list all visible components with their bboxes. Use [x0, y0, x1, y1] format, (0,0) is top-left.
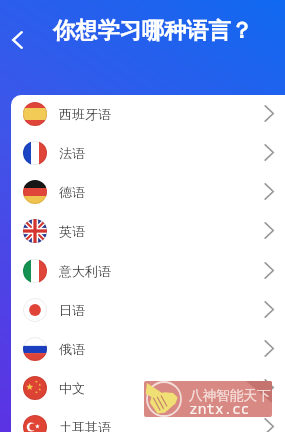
button[interactable]: 土耳其语 — [11, 407, 285, 432]
staticText: 土耳其语 — [59, 419, 111, 432]
staticText: zntx.cc — [189, 399, 250, 417]
button[interactable]: 英语 — [11, 211, 285, 250]
button[interactable]: 法语 — [11, 133, 285, 172]
button[interactable]: 中文 — [11, 368, 285, 407]
staticText: 日语 — [59, 302, 85, 318]
staticText: 德语 — [59, 184, 85, 200]
button[interactable]: 俄语 — [11, 329, 285, 368]
staticText: 法语 — [59, 145, 85, 161]
staticText: 西班牙语 — [59, 106, 111, 122]
button[interactable]: 德语 — [11, 172, 285, 211]
staticText: 俄语 — [59, 341, 85, 357]
button[interactable]: 日语 — [11, 290, 285, 329]
staticText: 意大利语 — [59, 263, 111, 279]
button[interactable]: 西班牙语 — [11, 95, 285, 133]
staticText: 八神智能天下 — [189, 387, 271, 404]
staticText: 中文 — [59, 380, 85, 396]
button[interactable]: Back — [2, 25, 32, 55]
button[interactable]: 意大利语 — [11, 251, 285, 290]
staticText: 英语 — [59, 223, 85, 239]
staticText: 你想学习哪种语言？ — [53, 17, 253, 45]
